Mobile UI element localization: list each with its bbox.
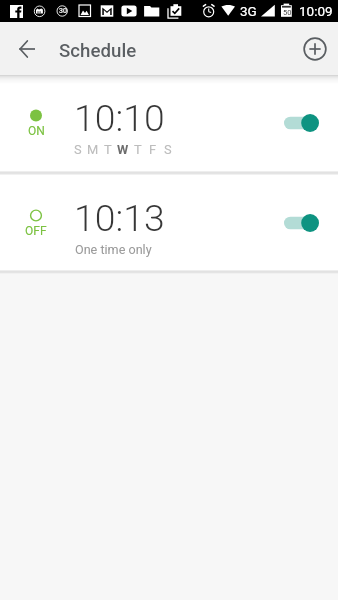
staticText: 10:10 xyxy=(74,96,165,140)
staticText: M xyxy=(87,142,99,157)
staticText: F xyxy=(149,142,157,157)
staticText: T xyxy=(104,142,112,157)
staticText: W xyxy=(117,142,129,157)
button[interactable]: Toggle alarm xyxy=(273,201,329,245)
button[interactable]: Add alarm xyxy=(293,22,337,75)
staticText: 50 xyxy=(283,8,292,17)
staticText: T xyxy=(134,142,142,157)
staticText: S xyxy=(164,142,172,157)
staticText: 3G xyxy=(240,3,257,19)
staticText: Schedule xyxy=(59,40,137,62)
staticText: One time only xyxy=(75,242,152,257)
button[interactable]: OFF xyxy=(0,175,338,270)
staticText: ON xyxy=(28,124,45,138)
staticText: OFF xyxy=(25,224,47,238)
staticText: S xyxy=(74,142,82,157)
button[interactable]: ON xyxy=(0,75,338,171)
staticText: 10:13 xyxy=(74,196,165,240)
button[interactable]: Toggle alarm xyxy=(273,101,329,145)
staticText: 10:09 xyxy=(299,3,333,19)
button[interactable]: Back xyxy=(0,22,54,75)
staticText: 30 xyxy=(59,7,67,15)
